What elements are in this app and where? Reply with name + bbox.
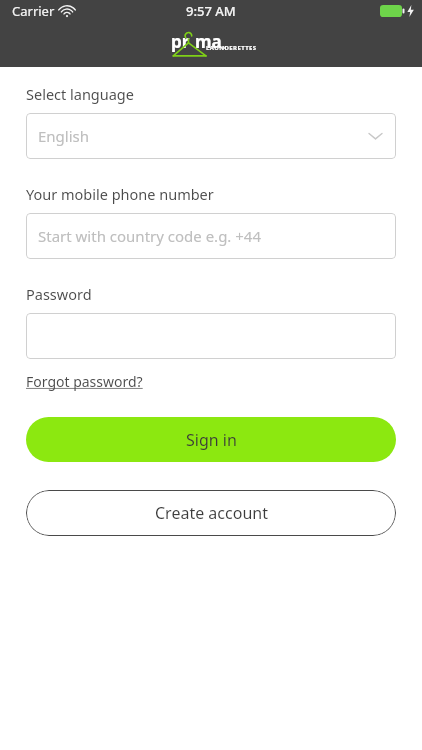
button[interactable]: Start with country code e.g. +44 bbox=[26, 213, 396, 259]
staticText: Start with country code e.g. +44 bbox=[38, 226, 262, 246]
staticText: English bbox=[38, 126, 90, 146]
staticText: Password bbox=[26, 284, 92, 304]
staticText: 9:57 AM bbox=[186, 2, 236, 20]
button[interactable]: Create account bbox=[26, 490, 396, 536]
staticText: Carrier bbox=[12, 2, 55, 20]
staticText: ma bbox=[195, 30, 222, 53]
staticText: Create account bbox=[155, 502, 268, 524]
staticText: pr bbox=[171, 30, 190, 53]
staticText: LAUNDERETTES bbox=[206, 44, 257, 52]
staticText: Your mobile phone number bbox=[26, 184, 214, 204]
staticText: Sign in bbox=[186, 429, 237, 451]
other: Prima Launderettes logo bbox=[163, 30, 259, 60]
staticText: Forgot password? bbox=[26, 372, 143, 391]
staticText: Select language bbox=[26, 84, 134, 104]
button[interactable]: English bbox=[26, 113, 396, 159]
button[interactable]: Forgot password? bbox=[26, 372, 143, 391]
button[interactable] bbox=[26, 313, 396, 359]
button[interactable]: Sign in bbox=[26, 417, 396, 462]
staticText: ™ bbox=[222, 45, 227, 53]
